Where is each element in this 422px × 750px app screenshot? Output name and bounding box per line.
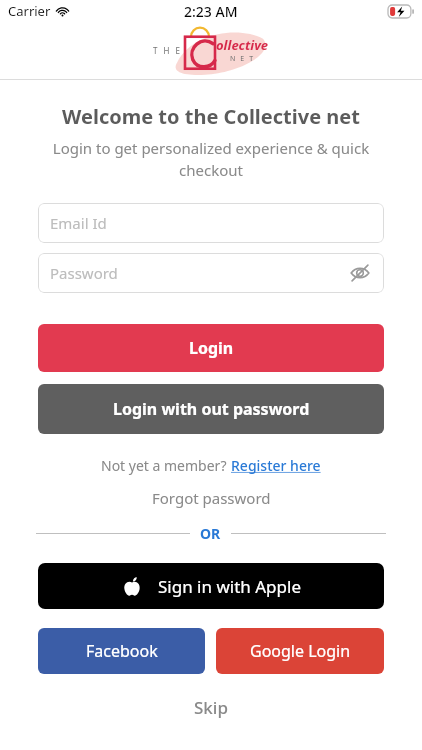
staticText: Email Id bbox=[50, 213, 107, 233]
staticText: Login to get personalized experience & q… bbox=[34, 138, 388, 181]
button[interactable]: Sign in with Apple bbox=[38, 563, 384, 609]
staticText: Welcome to the Collective net bbox=[0, 103, 422, 130]
staticText: Carrier bbox=[8, 2, 51, 20]
staticText: 2:23 AM bbox=[184, 2, 238, 21]
button[interactable]: Email Id bbox=[38, 203, 384, 243]
staticText: N E T bbox=[230, 54, 255, 64]
staticText: Register here bbox=[231, 456, 321, 475]
button[interactable]: Google Login bbox=[216, 628, 384, 674]
staticText: Not yet a member? bbox=[101, 456, 231, 475]
staticText: Login with out password bbox=[113, 398, 310, 420]
button[interactable]: Forgot password bbox=[0, 488, 422, 508]
staticText: Facebook bbox=[86, 640, 158, 662]
staticText: ollective bbox=[216, 36, 269, 54]
button[interactable]: Show password bbox=[348, 261, 372, 285]
button[interactable]: Facebook bbox=[38, 628, 205, 674]
staticText: Google Login bbox=[250, 640, 351, 662]
staticText: Forgot password bbox=[152, 488, 271, 508]
button[interactable]: Register here bbox=[231, 456, 321, 475]
button[interactable]: Password bbox=[38, 253, 384, 293]
staticText: Login bbox=[189, 337, 234, 359]
staticText: Sign in with Apple bbox=[158, 575, 301, 598]
staticText: Skip bbox=[194, 696, 228, 719]
staticText: T H E bbox=[153, 45, 182, 56]
staticText: Password bbox=[50, 263, 118, 283]
button[interactable]: Login bbox=[38, 324, 384, 372]
staticText: OR bbox=[200, 524, 221, 543]
button[interactable]: Login with out password bbox=[38, 384, 384, 434]
button[interactable]: Skip bbox=[0, 696, 422, 719]
